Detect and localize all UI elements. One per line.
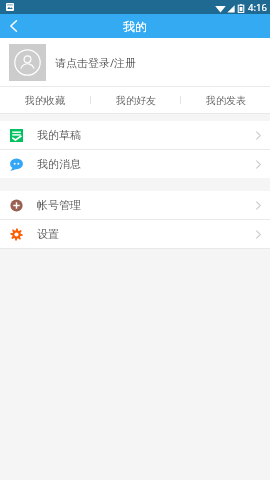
button[interactable]: 我的好友 — [91, 87, 180, 113]
staticText: 我的草稿 — [37, 128, 81, 142]
staticText: 我的好友 — [116, 94, 156, 107]
button[interactable]: 帐号管理 — [0, 191, 270, 219]
staticText: 我的收藏 — [25, 94, 65, 107]
staticText: 我的 — [123, 19, 147, 34]
staticText: 设置 — [37, 227, 59, 241]
staticText: 4:16 — [248, 1, 267, 14]
staticText: 我的发表 — [206, 94, 246, 107]
button[interactable]: 我的草稿 — [0, 121, 270, 149]
staticText: 帐号管理 — [37, 198, 81, 212]
button[interactable]: Back — [0, 14, 26, 38]
button[interactable]: 请点击登录/注册 — [0, 38, 270, 86]
staticText: 我的消息 — [37, 157, 81, 171]
button[interactable]: 我的发表 — [181, 87, 270, 113]
staticText: 请点击登录/注册 — [55, 55, 137, 70]
button[interactable]: 我的消息 — [0, 150, 270, 178]
button[interactable]: 我的收藏 — [0, 87, 90, 113]
button[interactable]: 设置 — [0, 220, 270, 248]
